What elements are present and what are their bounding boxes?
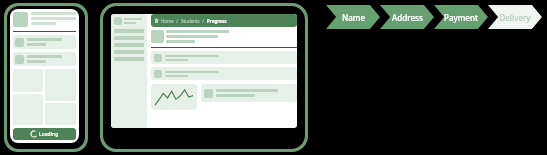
- staticText: /: [174, 18, 181, 24]
- button[interactable]: [13, 35, 76, 49]
- button[interactable]: Loading: [13, 128, 76, 140]
- button[interactable]: [201, 84, 297, 102]
- staticText: Address: [392, 12, 423, 23]
- button[interactable]: Name: [326, 5, 380, 29]
- staticText: Progress: [207, 18, 227, 24]
- staticText: Delivery: [499, 12, 531, 23]
- button[interactable]: [13, 52, 76, 66]
- button[interactable]: Payment: [434, 5, 488, 29]
- staticText: Loading: [39, 131, 59, 138]
- staticText: Payment: [444, 12, 478, 23]
- button[interactable]: [151, 51, 297, 64]
- button[interactable]: Delivery: [488, 5, 542, 29]
- staticText: Students: [181, 18, 200, 24]
- staticText: Home: [161, 18, 174, 24]
- button[interactable]: [151, 67, 297, 80]
- button[interactable]: [151, 84, 197, 110]
- other: Home: [154, 18, 159, 23]
- button[interactable]: Home: [151, 14, 297, 27]
- staticText: /: [200, 18, 207, 24]
- button[interactable]: Address: [380, 5, 434, 29]
- staticText: Name: [342, 12, 365, 23]
